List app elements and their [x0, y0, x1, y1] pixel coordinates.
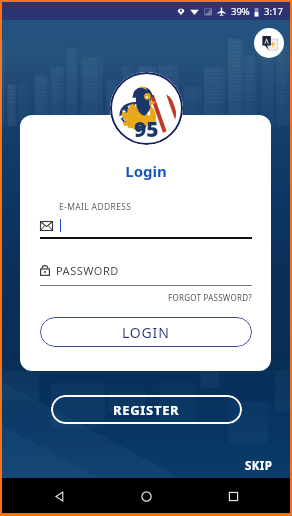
staticText: LOGIN	[122, 323, 170, 342]
staticText: Login	[40, 161, 252, 181]
staticText: PASSWORD	[56, 263, 119, 278]
staticText: 95	[134, 115, 159, 144]
button[interactable]: REGISTER	[51, 395, 242, 424]
staticText: SKIP	[245, 458, 273, 474]
button[interactable]: Home	[133, 483, 159, 509]
button[interactable]: FORGOT PASSWORD?	[40, 292, 252, 303]
button[interactable]: SKIP	[245, 458, 273, 474]
staticText: REGISTER	[113, 401, 180, 419]
button[interactable]: LOGIN	[40, 317, 252, 347]
staticText: E-MAIL ADDRESS	[59, 201, 132, 213]
button[interactable]: Back	[46, 483, 72, 509]
button[interactable]: Recent apps	[220, 483, 246, 509]
button[interactable]: Google Translate	[254, 28, 284, 58]
staticText: 3:17	[264, 5, 283, 18]
staticText: 39%	[231, 5, 250, 18]
